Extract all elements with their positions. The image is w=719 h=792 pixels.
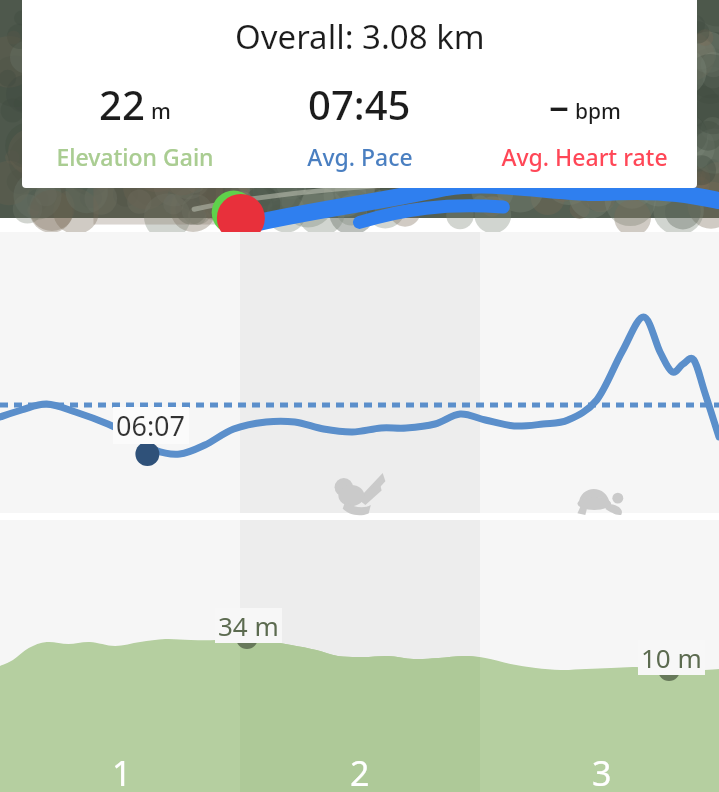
staticText: bpm xyxy=(575,97,621,126)
button[interactable]: Pace chart xyxy=(0,232,719,513)
staticText: m xyxy=(151,97,171,126)
staticText: 07:45 xyxy=(308,77,411,131)
button[interactable]: 07:45 xyxy=(247,77,472,172)
staticText: 3 xyxy=(592,750,612,792)
staticText: Avg. Pace xyxy=(307,141,413,172)
staticText: 10 m xyxy=(641,640,702,675)
staticText: 34 m xyxy=(218,608,279,643)
staticText: Avg. Heart rate xyxy=(501,141,668,172)
button[interactable]: Overall: 3.08 km xyxy=(22,0,697,188)
button[interactable]: Elevation chart xyxy=(0,520,719,792)
button[interactable]: Route map xyxy=(0,0,719,218)
staticText: – xyxy=(549,77,569,131)
staticText: 2 xyxy=(350,750,370,792)
staticText: 1 xyxy=(112,750,132,792)
staticText: 22 xyxy=(99,77,145,131)
button[interactable]: – xyxy=(472,77,697,172)
staticText: Overall: 3.08 km xyxy=(235,14,485,59)
button[interactable]: 22 xyxy=(22,77,247,172)
staticText: 06:07 xyxy=(116,407,186,444)
staticText: Elevation Gain xyxy=(56,141,214,172)
